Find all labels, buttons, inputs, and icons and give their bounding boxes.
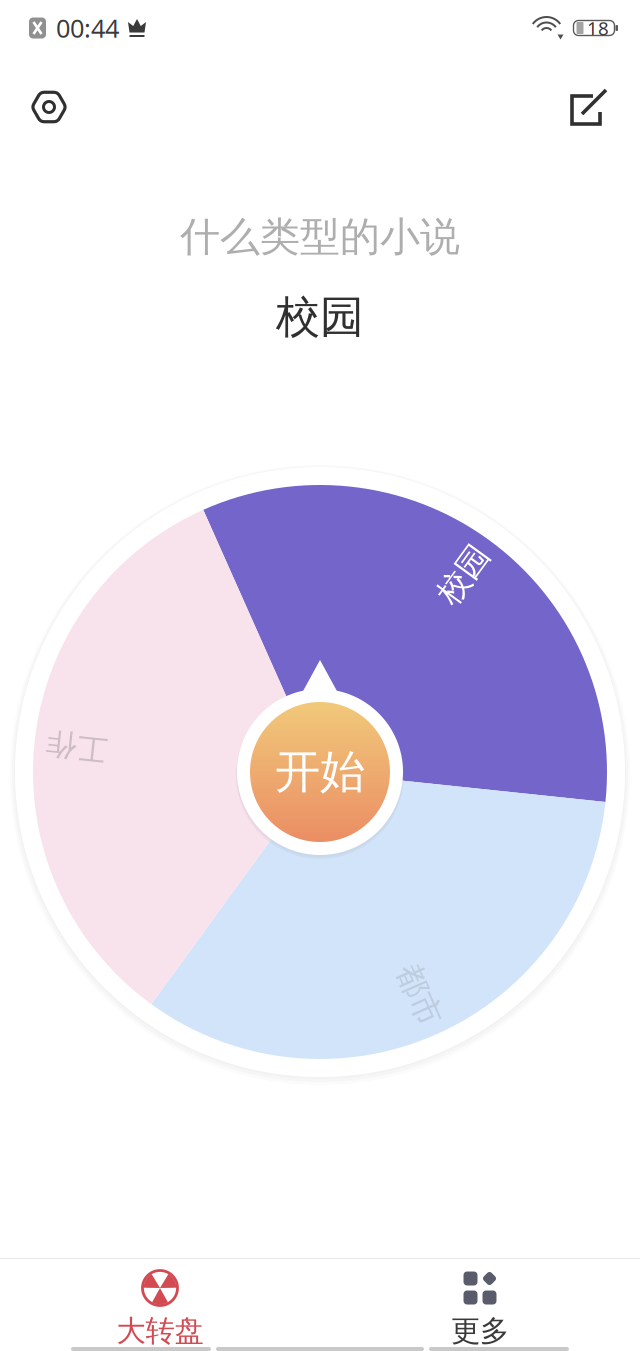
staticText: 00:44	[56, 11, 119, 45]
staticText: 校园	[431, 555, 495, 594]
staticText: 什么类型的小说	[180, 212, 460, 261]
staticText: 开始	[275, 744, 365, 800]
staticText: 更多	[451, 1313, 509, 1349]
button[interactable]: 大转盘	[0, 1259, 320, 1351]
button[interactable]: 开始	[250, 702, 390, 842]
staticText: 校园	[276, 290, 364, 344]
button[interactable]: Settings	[26, 84, 72, 130]
staticText: 大转盘	[116, 1313, 203, 1349]
button[interactable]: Compose	[566, 84, 612, 130]
staticText: 工作	[45, 728, 107, 765]
button[interactable]: 更多	[320, 1259, 640, 1351]
staticText: 18	[587, 16, 609, 40]
staticText: 都市	[387, 975, 451, 1015]
